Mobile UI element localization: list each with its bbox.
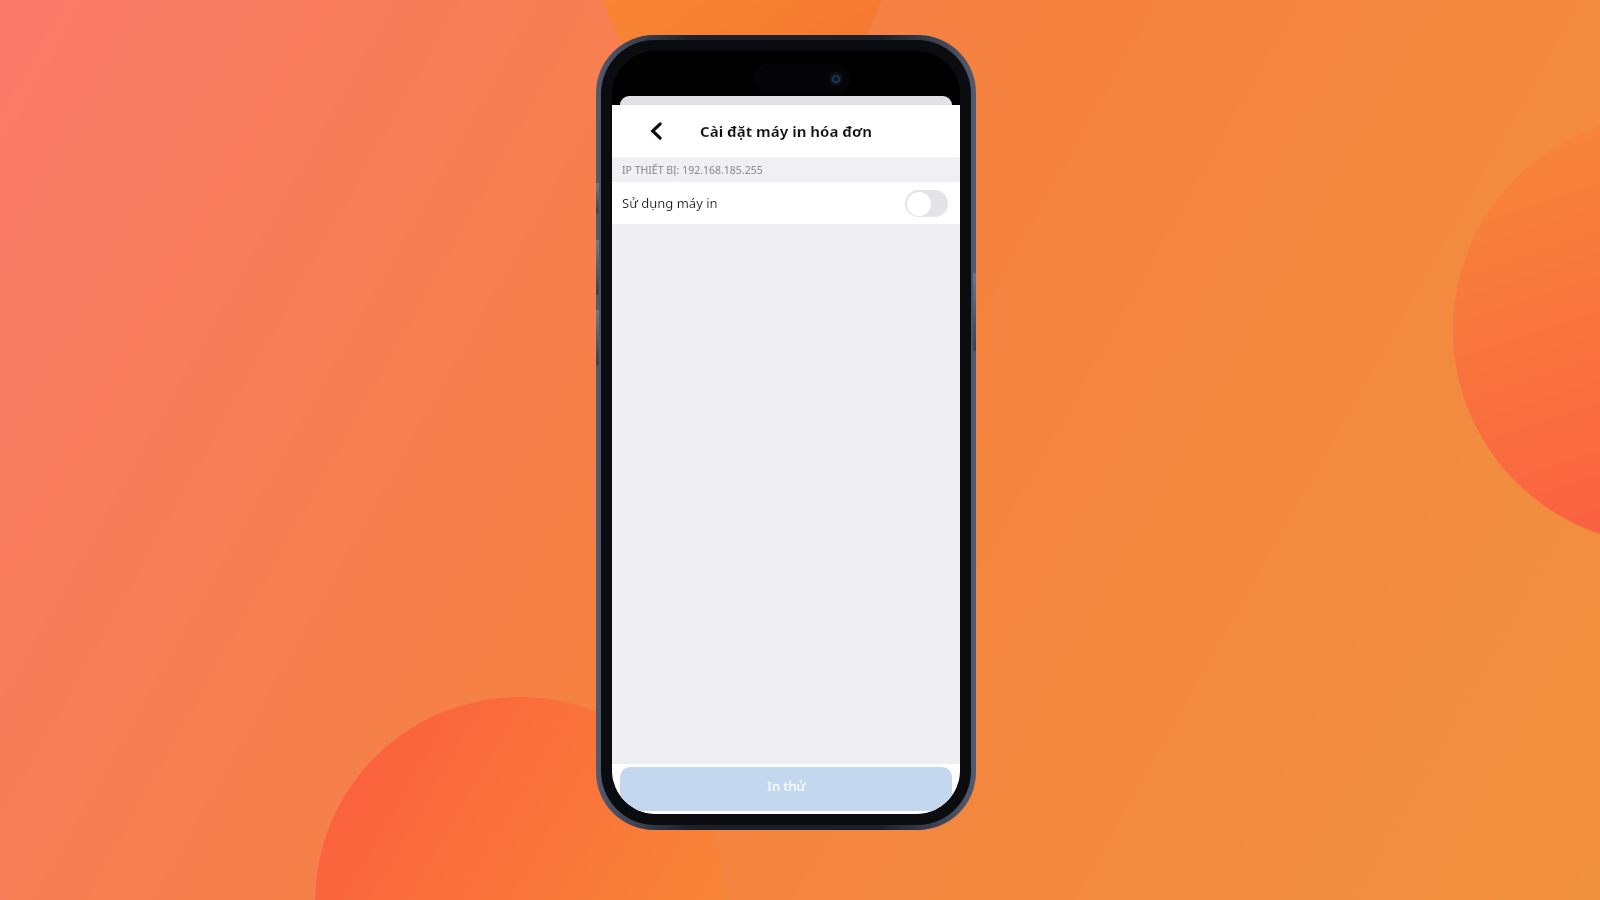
button[interactable]: Back [640,114,674,148]
staticText: Cài đặt máy in hóa đơn [700,121,872,141]
staticText: IP THIẾT BỊ: 192.168.185.255 [622,163,763,177]
staticText: In thử [767,777,806,795]
staticText: Sử dụng máy in [622,194,718,212]
button[interactable]: In thử [620,767,952,811]
button[interactable]: Sử dụng máy in [612,182,960,224]
button[interactable]: Sử dụng máy in toggle [905,190,948,217]
